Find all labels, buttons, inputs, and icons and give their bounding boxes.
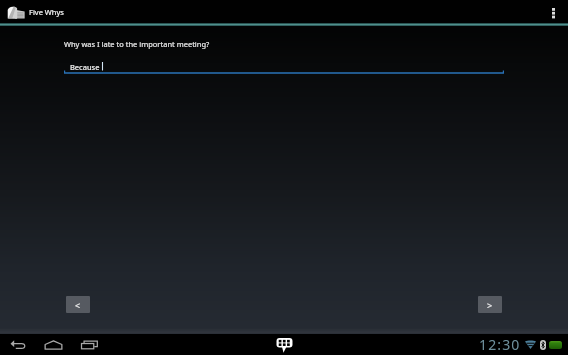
button[interactable]: Back (6, 334, 30, 355)
button[interactable]: Previous (66, 296, 90, 313)
button[interactable]: Recent apps (78, 334, 102, 355)
button[interactable]: Home (42, 334, 66, 355)
button[interactable]: More options (546, 0, 568, 24)
button[interactable]: Next (478, 296, 502, 313)
staticText: < (75, 299, 81, 311)
staticText: Five Whys (29, 7, 64, 17)
button[interactable]: Keyboard (272, 334, 296, 355)
staticText: Why was I late to the important meeting? (64, 39, 210, 49)
staticText: > (487, 299, 493, 311)
button[interactable]: Because (64, 58, 504, 74)
staticText: Because (70, 62, 102, 72)
staticText: 12:30 (479, 335, 521, 354)
